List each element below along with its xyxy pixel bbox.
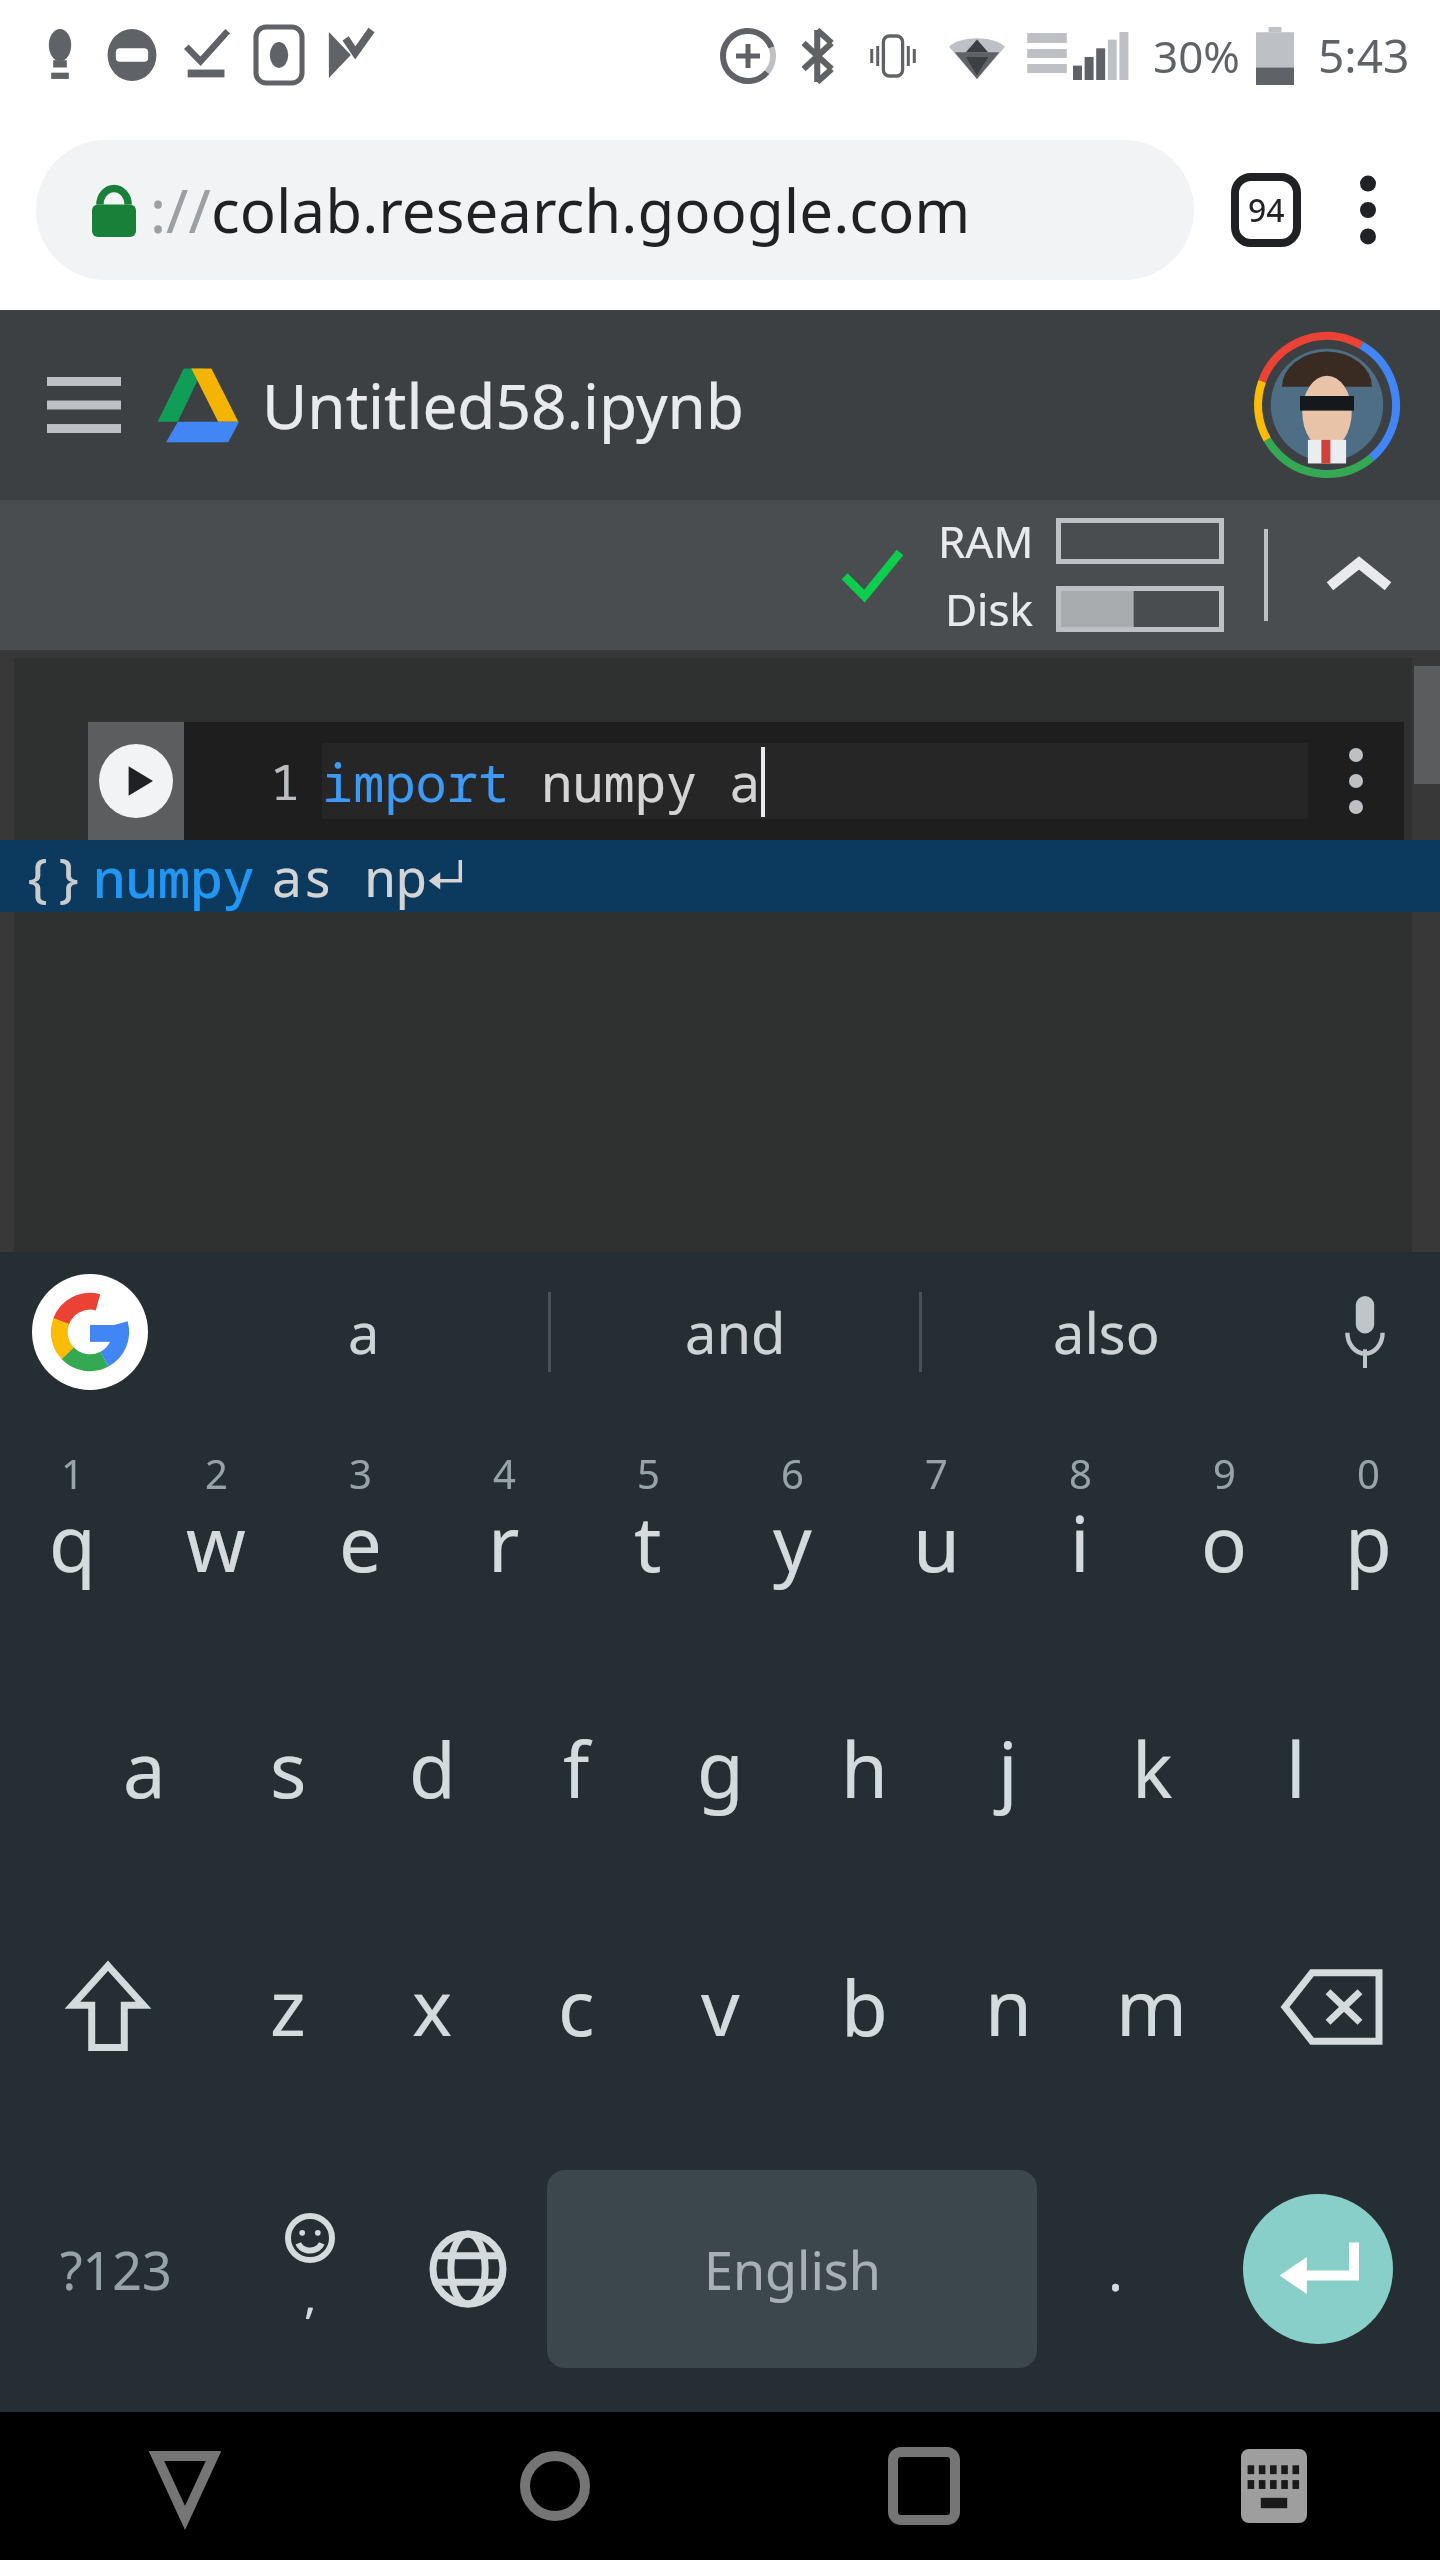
staticText: ,	[304, 2264, 317, 2327]
staticText: c	[558, 1955, 595, 2059]
button[interactable]: v	[648, 1888, 792, 2126]
button[interactable]: m	[1080, 1888, 1224, 2126]
button[interactable]: f	[504, 1650, 648, 1888]
staticText: t	[634, 1491, 662, 1595]
button[interactable]: j	[936, 1650, 1080, 1888]
staticText: ://	[150, 169, 211, 251]
button[interactable]: Switch keyboard	[1108, 2412, 1440, 2560]
staticText: 94	[1248, 188, 1285, 232]
button[interactable]: Emoji	[231, 2126, 389, 2412]
button[interactable]: English	[547, 2170, 1037, 2368]
button[interactable]: ?123	[0, 2126, 231, 2412]
button[interactable]: k	[1080, 1650, 1224, 1888]
button[interactable]: ://	[36, 140, 1194, 280]
button[interactable]: 9	[1152, 1412, 1296, 1650]
staticText: 30%	[1153, 26, 1240, 86]
staticText: numpy	[93, 840, 255, 912]
button[interactable]: n	[936, 1888, 1080, 2126]
staticText: k	[1132, 1717, 1173, 1821]
button[interactable]: Menu	[34, 355, 134, 455]
button[interactable]: b	[792, 1888, 936, 2126]
staticText: colab.research.google.com	[211, 169, 971, 251]
button[interactable]: 8	[1008, 1412, 1152, 1650]
button[interactable]: x	[360, 1888, 504, 2126]
button[interactable]: h	[792, 1650, 936, 1888]
button[interactable]: {}	[0, 840, 1440, 912]
staticText: ?123	[60, 2234, 172, 2305]
button[interactable]: 3	[288, 1412, 432, 1650]
button[interactable]: a	[180, 1252, 548, 1412]
button[interactable]: Change language	[389, 2126, 547, 2412]
staticText: f	[563, 1717, 590, 1821]
button[interactable]: c	[504, 1888, 648, 2126]
staticText: 0	[1357, 1446, 1380, 1500]
staticText: 8	[1069, 1446, 1092, 1500]
button[interactable]: More options	[1322, 164, 1414, 256]
staticText: e	[339, 1491, 382, 1595]
staticText: 3	[349, 1446, 372, 1500]
button[interactable]: 0	[1296, 1412, 1440, 1650]
button[interactable]: l	[1224, 1650, 1368, 1888]
button[interactable]: s	[216, 1650, 360, 1888]
button[interactable]: Tabs	[1220, 164, 1312, 256]
button[interactable]: 7	[864, 1412, 1008, 1650]
button[interactable]: z	[216, 1888, 360, 2126]
staticText: RAM	[938, 511, 1034, 571]
staticText: also	[1053, 1294, 1160, 1370]
button[interactable]: 4	[432, 1412, 576, 1650]
button[interactable]: Home	[370, 2412, 739, 2560]
staticText: i	[1070, 1491, 1090, 1595]
button[interactable]: also	[922, 1252, 1290, 1412]
staticText: l	[1286, 1717, 1306, 1821]
button[interactable]: and	[551, 1252, 919, 1412]
button[interactable]: Enter	[1243, 2194, 1393, 2344]
staticText: s	[270, 1717, 307, 1821]
button[interactable]: Back	[0, 2412, 370, 2560]
staticText: w	[186, 1491, 246, 1595]
staticText: .	[1108, 2231, 1124, 2307]
button[interactable]: Collapse	[1304, 520, 1414, 630]
staticText: q	[49, 1491, 96, 1595]
staticText: m	[1116, 1955, 1188, 2059]
button[interactable]: 5	[576, 1412, 720, 1650]
staticText: u	[913, 1491, 960, 1595]
staticText: 1	[61, 1446, 84, 1500]
staticText: 5:43	[1318, 24, 1410, 87]
button[interactable]: Run cell	[88, 722, 184, 840]
staticText: a	[729, 746, 761, 817]
staticText: j	[998, 1717, 1018, 1821]
button[interactable]: 2	[144, 1412, 288, 1650]
staticText: z	[270, 1955, 306, 2059]
staticText: and	[685, 1294, 786, 1370]
button[interactable]: .	[1037, 2126, 1195, 2412]
staticText: o	[1201, 1491, 1247, 1595]
staticText: a	[123, 1717, 166, 1821]
button[interactable]: Google	[0, 1252, 180, 1412]
staticText: a	[348, 1294, 380, 1370]
staticText: 5	[637, 1446, 660, 1500]
staticText: 4	[493, 1446, 516, 1500]
button[interactable]: Backspace	[1224, 1888, 1440, 2126]
button[interactable]: a	[72, 1650, 216, 1888]
button[interactable]: Cell options	[1308, 722, 1404, 840]
staticText: as np	[271, 841, 428, 912]
staticText: English	[704, 2234, 881, 2305]
staticText: import	[322, 746, 510, 817]
staticText: {}	[22, 841, 85, 912]
button[interactable]: g	[648, 1650, 792, 1888]
staticText: h	[841, 1717, 888, 1821]
staticText: Disk	[945, 579, 1034, 639]
staticText: n	[985, 1955, 1032, 2059]
staticText: Untitled58.ipynb	[262, 363, 744, 447]
staticText: numpy	[510, 746, 729, 817]
button[interactable]: Recent apps	[739, 2412, 1108, 2560]
staticText: p	[1345, 1491, 1392, 1595]
button[interactable]: Voice input	[1290, 1252, 1440, 1412]
staticText: 9	[1213, 1446, 1236, 1500]
button[interactable]: 6	[720, 1412, 864, 1650]
staticText: 1	[270, 747, 300, 815]
button[interactable]: 1	[0, 1412, 144, 1650]
button[interactable]: Shift	[0, 1888, 216, 2126]
button[interactable]: d	[360, 1650, 504, 1888]
staticText: 2	[205, 1446, 228, 1500]
